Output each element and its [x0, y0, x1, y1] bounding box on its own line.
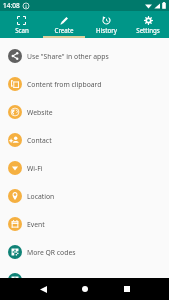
button[interactable]: Use "Share" in other apps	[0, 42, 169, 70]
button[interactable]: Settings	[127, 11, 169, 38]
staticText: 14:08	[3, 1, 20, 10]
button[interactable]: Website	[0, 98, 169, 126]
staticText: Use "Share" in other apps	[27, 52, 109, 61]
staticText: Event	[27, 220, 45, 229]
staticText: History	[96, 26, 117, 34]
button[interactable]: Home	[64, 278, 106, 300]
button[interactable]: Text	[0, 266, 169, 278]
staticText: Scan	[15, 26, 29, 34]
button[interactable]: Wi-Fi	[0, 154, 169, 182]
staticText: Location	[27, 192, 55, 201]
button[interactable]: Recent apps	[106, 278, 148, 300]
staticText: Website	[27, 108, 53, 117]
button[interactable]: Back	[22, 278, 64, 300]
button[interactable]: History	[85, 11, 127, 38]
button[interactable]: Create	[43, 11, 85, 38]
staticText: Content from clipboard	[27, 80, 102, 89]
button[interactable]: Content from clipboard	[0, 70, 169, 98]
button[interactable]: Event	[0, 210, 169, 238]
staticText: Wi-Fi	[27, 164, 43, 173]
staticText: Contact	[27, 136, 52, 145]
button[interactable]: Location	[0, 182, 169, 210]
button[interactable]: Scan	[0, 11, 43, 38]
button[interactable]: More QR codes	[0, 238, 169, 266]
staticText: More QR codes	[27, 248, 76, 257]
staticText: Settings	[136, 26, 160, 34]
staticText: Create	[54, 26, 74, 34]
button[interactable]: Contact	[0, 126, 169, 154]
